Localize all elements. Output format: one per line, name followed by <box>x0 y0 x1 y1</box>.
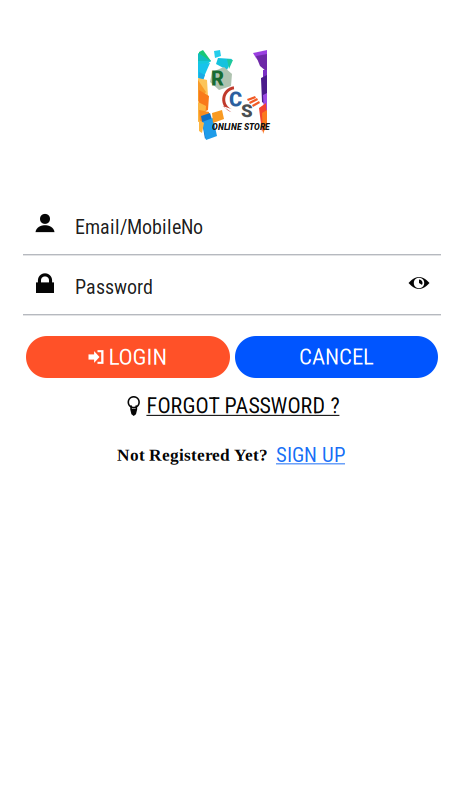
button[interactable]: CANCEL <box>235 336 438 378</box>
staticText: CANCEL <box>299 344 374 370</box>
staticText: LOGIN <box>108 344 167 370</box>
staticText: S <box>241 100 253 122</box>
staticText: Email/MobileNo <box>75 216 203 239</box>
staticText: Not Registered Yet? <box>117 445 268 465</box>
button[interactable]: LOGIN <box>26 336 230 378</box>
staticText: R <box>211 67 224 90</box>
button[interactable]: Show password <box>402 268 436 298</box>
staticText: C <box>229 88 242 111</box>
button[interactable]: FORGOT PASSWORD ? <box>127 393 339 419</box>
staticText: Password <box>75 276 153 299</box>
staticText: SIGN UP <box>276 443 345 467</box>
button[interactable]: SIGN UP <box>276 443 345 467</box>
staticText: FORGOT PASSWORD ? <box>146 393 339 418</box>
staticText: ONLINE STORE <box>212 122 270 132</box>
